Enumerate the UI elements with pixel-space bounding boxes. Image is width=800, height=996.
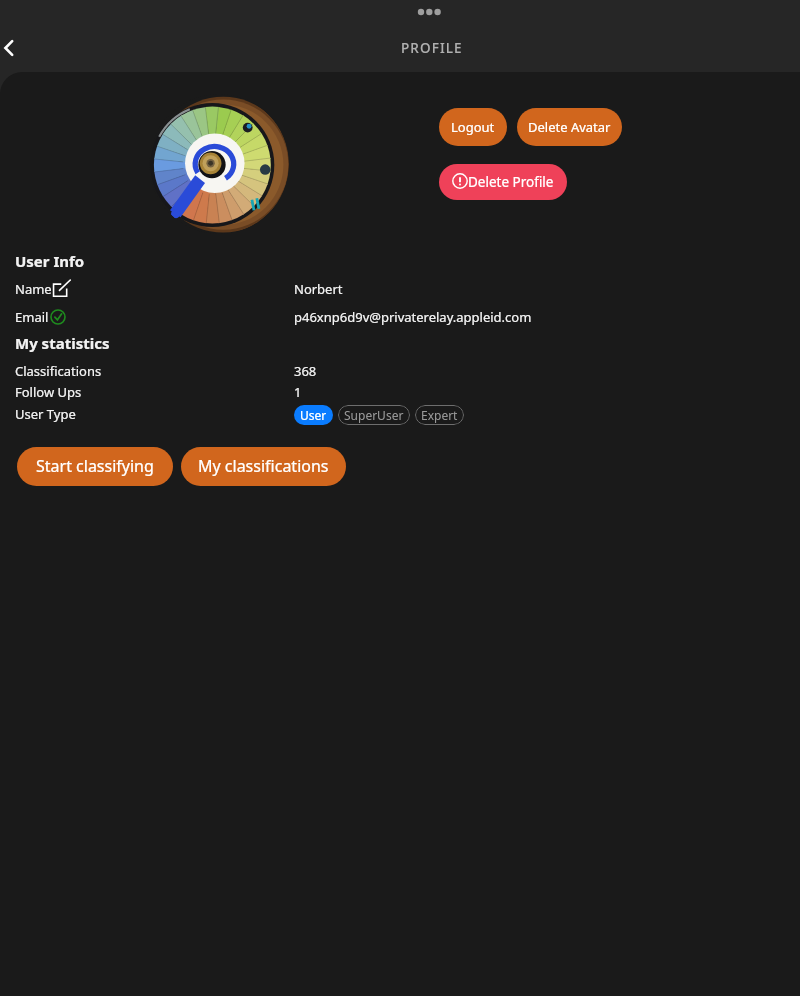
button[interactable]: Edit name [53, 280, 71, 298]
staticText: 1 [294, 383, 302, 401]
staticText: Norbert [294, 280, 343, 298]
staticText: Classifications [15, 362, 102, 380]
staticText: Delete Profile [468, 173, 554, 191]
button[interactable]: SuperUser [338, 405, 410, 425]
button[interactable]: User [294, 405, 333, 425]
staticText: Name [15, 280, 52, 298]
button[interactable]: Profile avatar [149, 94, 289, 234]
staticText: User Info [15, 251, 85, 271]
staticText: Start classifying [36, 455, 154, 477]
button[interactable]: Expert [415, 405, 464, 425]
staticText: Delete Avatar [528, 118, 611, 136]
staticText: Follow Ups [15, 383, 82, 401]
staticText: SuperUser [344, 407, 404, 423]
staticText: My classifications [198, 455, 329, 477]
staticText: Email [15, 308, 49, 326]
staticText: p46xnp6d9v@privaterelay.appleid.com [294, 308, 532, 326]
staticText: User Type [15, 405, 76, 423]
staticText: My statistics [15, 333, 110, 353]
button[interactable]: Start classifying [17, 447, 173, 486]
button[interactable]: Logout [439, 108, 507, 146]
button[interactable]: Back [0, 28, 40, 68]
button[interactable]: Delete Avatar [517, 108, 622, 146]
staticText: 368 [294, 362, 317, 380]
staticText: Expert [421, 407, 458, 423]
staticText: User [300, 407, 327, 423]
button[interactable]: Delete Profile [439, 164, 567, 200]
staticText: PROFILE [401, 39, 463, 57]
button[interactable]: My classifications [181, 447, 346, 486]
staticText: Logout [451, 118, 495, 136]
